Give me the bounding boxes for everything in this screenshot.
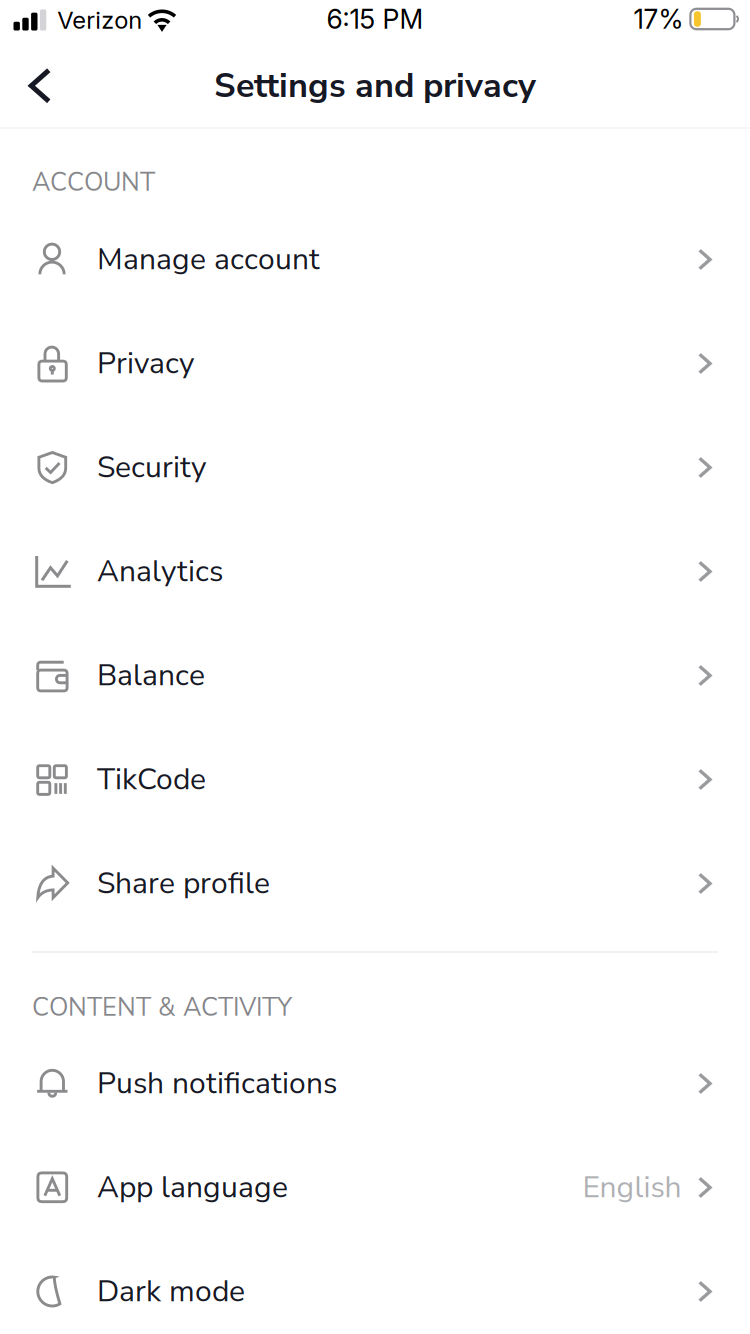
button[interactable]: Back: [0, 44, 80, 127]
staticText: Dark mode: [97, 1271, 245, 1312]
button[interactable]: Push notifications: [0, 1031, 750, 1135]
staticText: Security: [97, 447, 206, 488]
button[interactable]: Security: [0, 415, 750, 519]
staticText: Push notifications: [97, 1063, 337, 1104]
button[interactable]: Share profile: [0, 831, 750, 935]
button[interactable]: App language: [0, 1135, 750, 1239]
staticText: CONTENT & ACTIVITY: [32, 990, 292, 1025]
button[interactable]: Manage account: [0, 207, 750, 311]
staticText: Manage account: [97, 239, 320, 280]
staticText: 6:15 PM: [326, 3, 423, 35]
staticText: App language: [97, 1167, 288, 1208]
staticText: TikCode: [97, 759, 206, 800]
staticText: ACCOUNT: [32, 165, 155, 200]
staticText: English: [583, 1167, 682, 1208]
button[interactable]: Analytics: [0, 519, 750, 623]
button[interactable]: Privacy: [0, 311, 750, 415]
button[interactable]: Balance: [0, 623, 750, 727]
staticText: Balance: [97, 655, 205, 696]
staticText: Verizon: [57, 5, 142, 34]
staticText: Share profile: [97, 863, 270, 904]
staticText: Settings and privacy: [214, 62, 536, 109]
button[interactable]: Dark mode: [0, 1239, 750, 1334]
staticText: Analytics: [97, 551, 223, 592]
staticText: Privacy: [97, 343, 194, 384]
staticText: 17%: [633, 3, 683, 35]
button[interactable]: TikCode: [0, 727, 750, 831]
